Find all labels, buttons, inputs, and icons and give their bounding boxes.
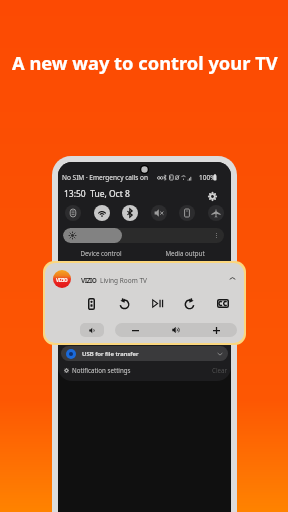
staticText: VIZIO bbox=[81, 276, 97, 285]
button[interactable]: Mute bbox=[151, 205, 167, 221]
button[interactable]: Fast forward bbox=[182, 296, 197, 311]
button[interactable]: Play or pause bbox=[150, 296, 165, 311]
button[interactable]: Mute bbox=[80, 323, 104, 337]
staticText: Media output bbox=[165, 249, 205, 257]
button[interactable]: Auto rotate bbox=[179, 205, 195, 221]
staticText: Device control bbox=[80, 249, 122, 257]
button[interactable]: Brightness bbox=[63, 228, 224, 243]
button[interactable]: Closed captions bbox=[215, 296, 230, 311]
staticText: VIZIO bbox=[56, 277, 68, 283]
staticText: No SIM · Emergency calls on bbox=[62, 173, 149, 182]
staticText: 100% bbox=[199, 173, 216, 182]
staticText: Living Room TV bbox=[100, 276, 147, 285]
staticText: Clear bbox=[212, 366, 228, 374]
staticText: USB for file transfer bbox=[82, 350, 139, 358]
button[interactable]: Collapse bbox=[225, 271, 239, 285]
button[interactable]: USB for file transfer bbox=[61, 346, 228, 361]
button[interactable]: Wi-Fi bbox=[94, 205, 110, 221]
staticText: 13:50 Tue, Oct 8 bbox=[64, 188, 130, 200]
button[interactable]: Airplane mode bbox=[208, 205, 224, 221]
button[interactable]: Volume down bbox=[115, 323, 155, 337]
button[interactable]: Device controls bbox=[65, 205, 81, 221]
staticText: A new way to control your TV bbox=[12, 50, 278, 75]
button[interactable]: Bluetooth bbox=[122, 205, 138, 221]
button[interactable]: Rewind bbox=[117, 296, 132, 311]
button[interactable]: Remote bbox=[84, 296, 99, 311]
button[interactable]: Settings bbox=[205, 189, 219, 203]
staticText: Notification settings bbox=[72, 366, 131, 374]
button[interactable]: Volume up bbox=[196, 323, 237, 337]
